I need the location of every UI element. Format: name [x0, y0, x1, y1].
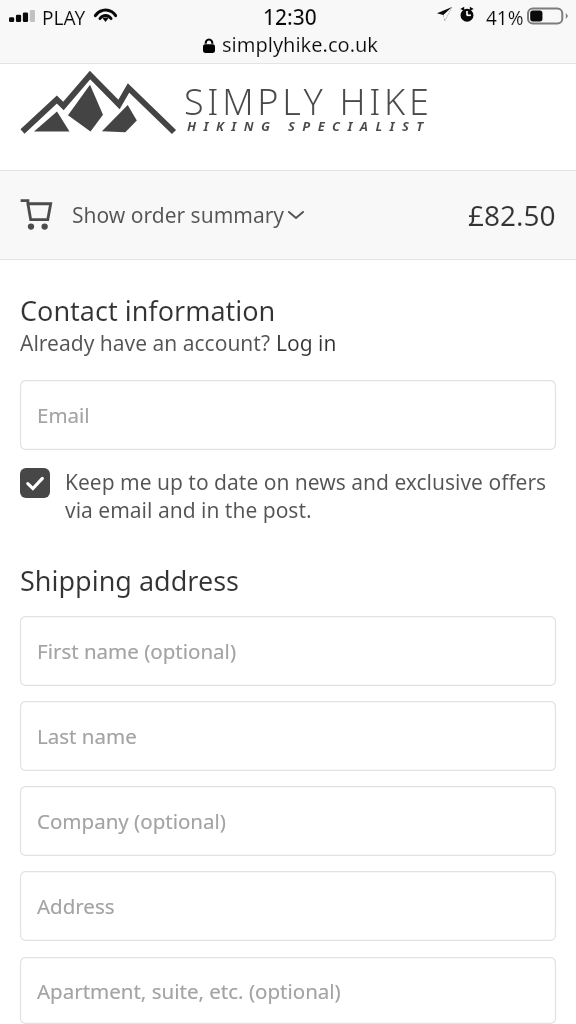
button[interactable]: Last name	[20, 701, 556, 771]
button[interactable]: Cart	[0, 171, 576, 259]
staticText: Shipping address	[20, 562, 240, 599]
button[interactable]: Simply Hike home	[20, 73, 176, 133]
staticText: PLAY	[42, 5, 86, 31]
staticText: Apartment, suite, etc. (optional)	[37, 977, 341, 1005]
staticText: Contact information	[20, 292, 276, 329]
staticText: Last name	[37, 722, 137, 750]
other: Battery 41 percent	[527, 8, 568, 24]
button[interactable]: Log in	[276, 329, 337, 358]
button[interactable]: Company (optional)	[20, 786, 556, 856]
staticText: simplyhike.co.uk	[222, 31, 379, 58]
staticText: Email	[37, 401, 90, 429]
staticText: Keep me up to date on news and exclusive…	[65, 468, 554, 524]
staticText: Already have an account?	[20, 329, 276, 358]
other: Wi-Fi	[95, 7, 116, 22]
staticText: Company (optional)	[37, 807, 226, 835]
button[interactable]: Apartment, suite, etc. (optional)	[20, 957, 556, 1024]
button[interactable]: Keep me up to date	[20, 468, 50, 498]
staticText: Address	[37, 892, 115, 920]
other: Cart	[20, 200, 51, 230]
staticText: HIKING SPECIALIST	[187, 117, 431, 135]
staticText: 41%	[486, 5, 524, 31]
staticText: 12:30	[263, 3, 317, 32]
staticText: £82.50	[468, 196, 556, 234]
staticText: First name (optional)	[37, 637, 237, 665]
staticText: Show order summary	[72, 201, 285, 230]
button[interactable]: First name (optional)	[20, 616, 556, 686]
button[interactable]: Email	[20, 380, 556, 450]
button[interactable]: Address	[20, 871, 556, 941]
staticText: SIMPLY HIKE	[184, 77, 433, 126]
